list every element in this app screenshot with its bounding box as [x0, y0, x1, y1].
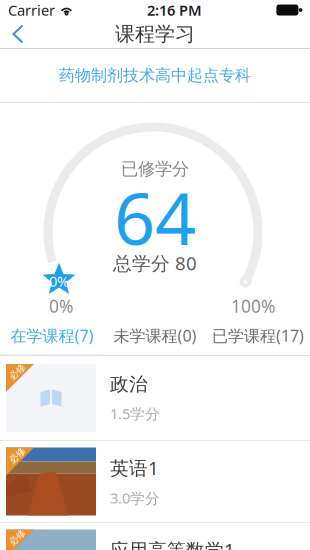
- staticText: 英语1: [110, 455, 159, 480]
- staticText: 应用高等数学1: [110, 537, 235, 550]
- staticText: 必修: [8, 532, 26, 543]
- staticText: 必修: [8, 450, 26, 461]
- staticText: 100%: [231, 294, 275, 317]
- staticText: 3.0学分: [110, 488, 160, 508]
- button[interactable]: 必修: [0, 523, 310, 550]
- staticText: 0%: [49, 294, 73, 317]
- staticText: 课程学习: [115, 22, 195, 46]
- button[interactable]: 必修: [0, 356, 310, 441]
- staticText: 政治: [110, 373, 148, 396]
- staticText: 2:16 PM: [147, 0, 202, 20]
- staticText: 已学课程(17): [212, 325, 304, 346]
- button[interactable]: 必修: [0, 441, 310, 523]
- staticText: 64: [114, 169, 196, 265]
- staticText: Carrier: [8, 0, 55, 20]
- staticText: 在学课程(7): [10, 325, 93, 346]
- button[interactable]: 已学课程(17): [206, 318, 309, 355]
- staticText: 必修: [8, 366, 26, 378]
- button[interactable]: 未学课程(0): [103, 318, 206, 355]
- staticText: 药物制剂技术高中起点专科: [59, 66, 251, 85]
- staticText: 总学分 80: [113, 251, 197, 275]
- button[interactable]: Back: [0, 20, 36, 48]
- staticText: 1.5学分: [110, 404, 160, 423]
- staticText: 0%: [49, 271, 69, 291]
- button[interactable]: 在学课程(7): [0, 318, 103, 355]
- staticText: 未学课程(0): [113, 325, 196, 346]
- staticText: 已修学分: [121, 158, 189, 180]
